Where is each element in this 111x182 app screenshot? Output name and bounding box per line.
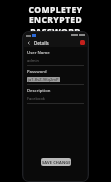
button[interactable]: Description xyxy=(27,88,84,104)
button[interactable]: Password xyxy=(27,69,84,85)
staticText: admin xyxy=(27,58,39,63)
staticText: Password xyxy=(27,69,47,75)
staticText: User Name xyxy=(27,50,50,56)
staticText: COMPLETEY ENCRYPTED xyxy=(4,4,107,25)
button[interactable]: User Name xyxy=(27,50,84,66)
staticText: PASSWORD xyxy=(30,26,81,38)
button[interactable]: SAVE CHANGE xyxy=(41,158,71,166)
staticText: Facebook xyxy=(27,96,45,101)
staticText: Details xyxy=(34,40,49,46)
button[interactable]: Back xyxy=(26,40,32,46)
staticText: SAVE CHANGE xyxy=(42,160,71,165)
staticText: ja1-8vZ-9Kq2mP xyxy=(28,77,59,82)
button[interactable]: Delete xyxy=(80,40,85,45)
staticText: Description xyxy=(27,88,51,94)
